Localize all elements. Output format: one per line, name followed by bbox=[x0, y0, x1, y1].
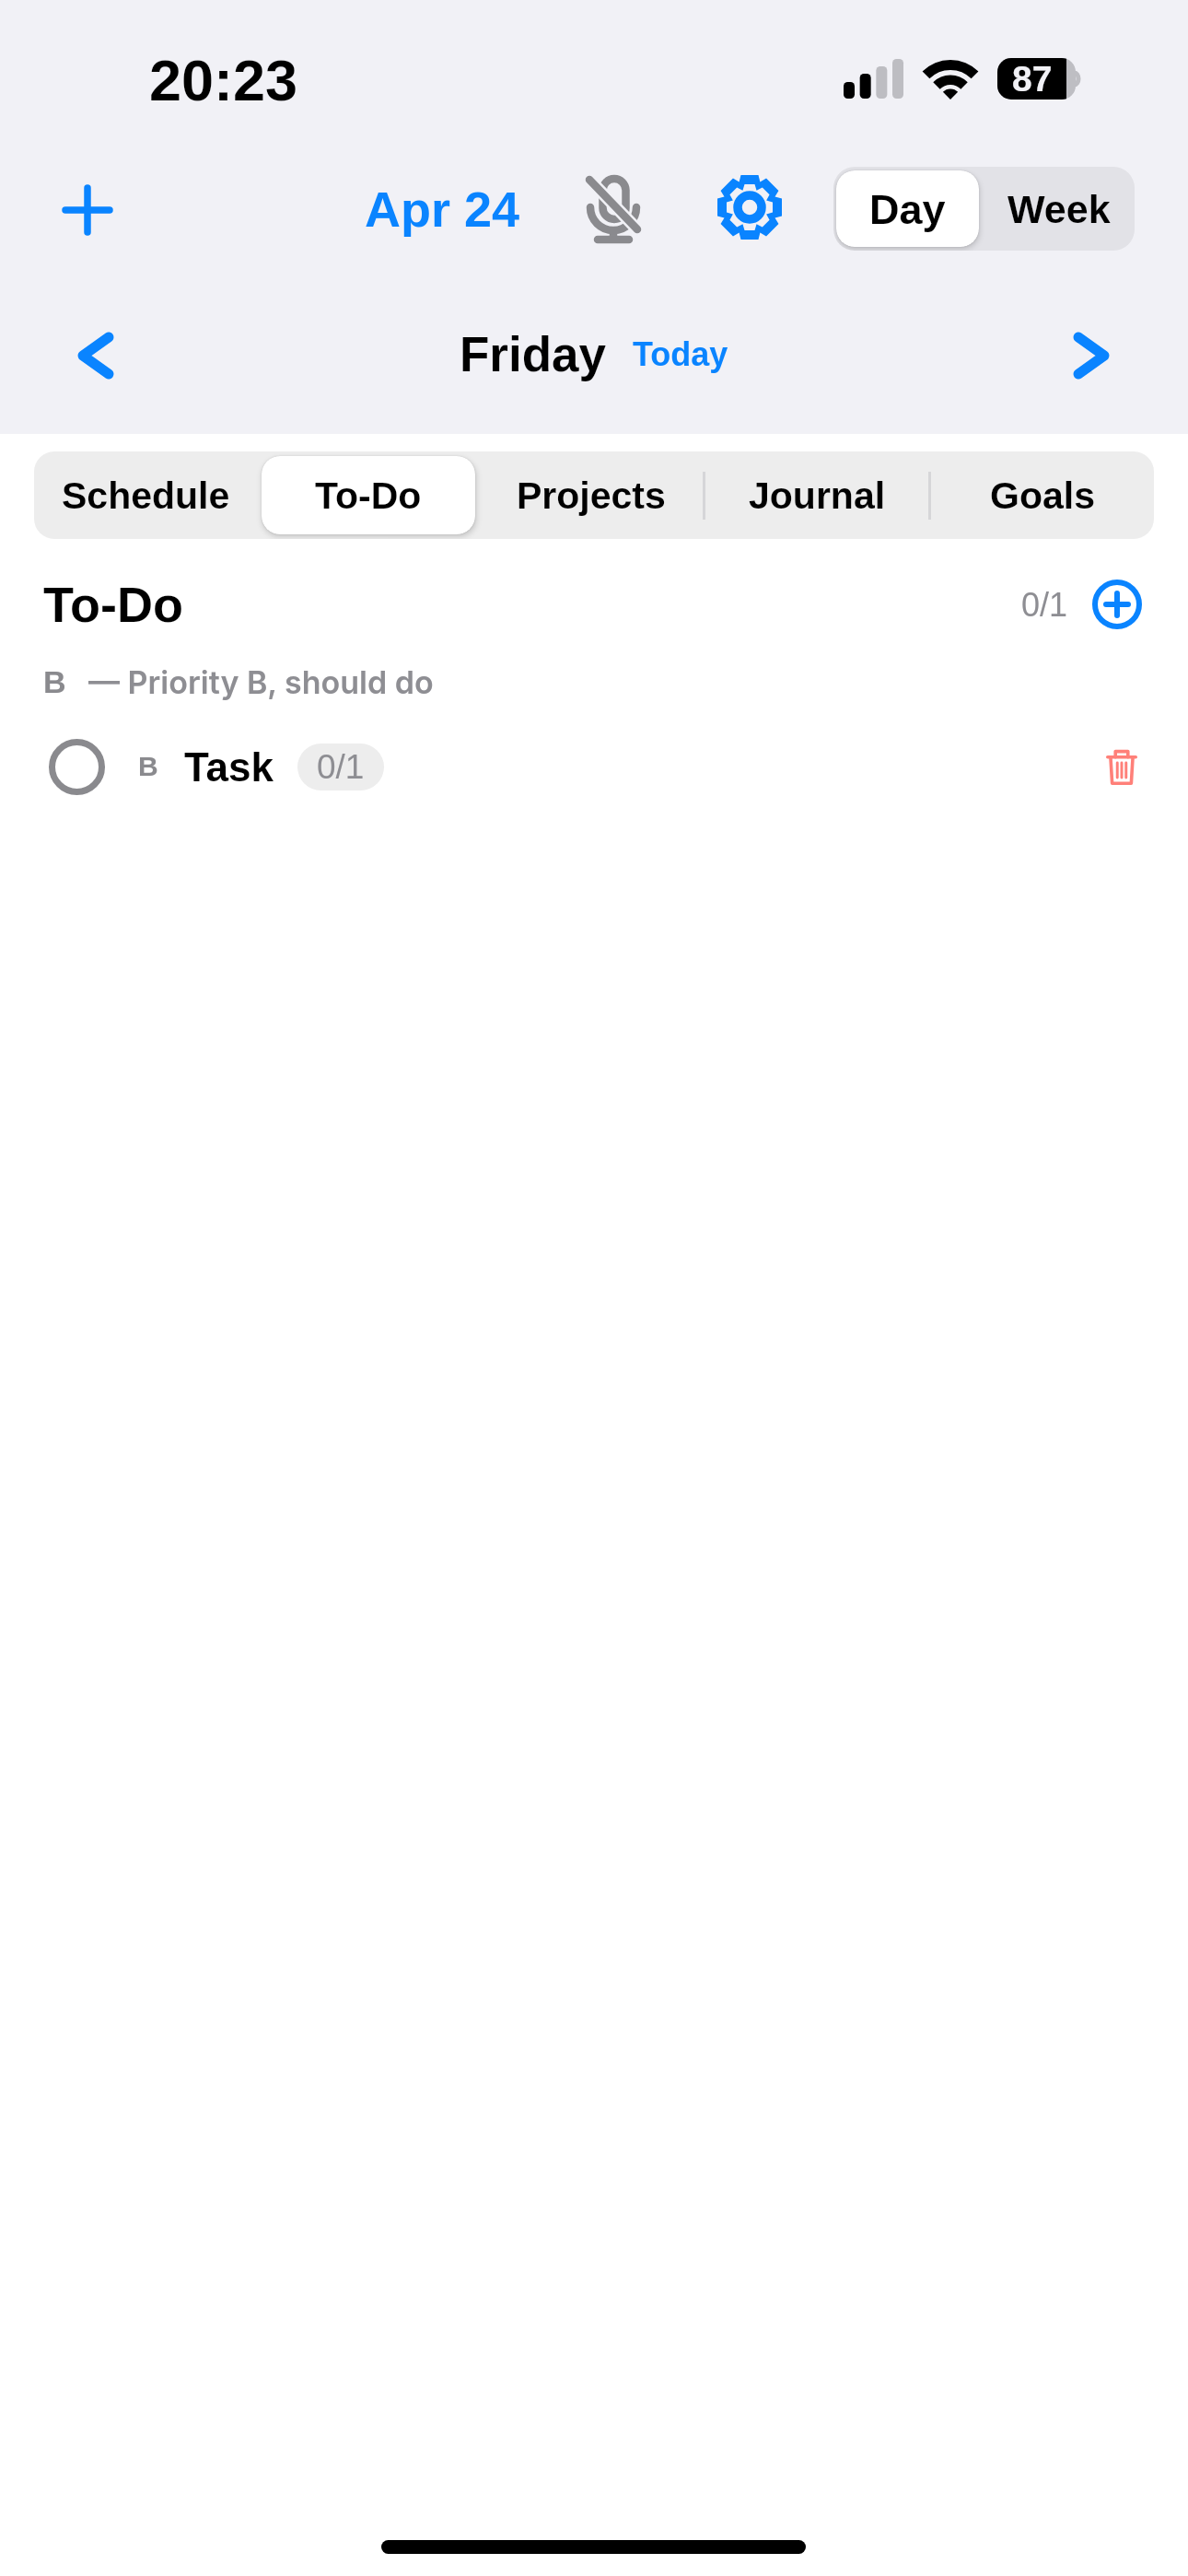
staticText: 20:23 bbox=[149, 48, 298, 112]
button[interactable]: Day bbox=[836, 170, 979, 247]
staticText: Week bbox=[1007, 187, 1111, 231]
button[interactable]: Add bbox=[41, 164, 134, 256]
staticText: 0/1 bbox=[317, 748, 365, 786]
button[interactable]: Schedule bbox=[39, 456, 252, 534]
button[interactable]: Add to-do bbox=[1092, 580, 1142, 629]
staticText: Apr 24 bbox=[365, 181, 520, 237]
staticText: — Priority B, should do bbox=[88, 663, 434, 701]
button[interactable]: Microphone off bbox=[576, 172, 651, 248]
staticText: To-Do bbox=[315, 474, 422, 517]
button[interactable]: Apr 24 bbox=[365, 181, 520, 237]
button[interactable]: Settings bbox=[712, 170, 787, 245]
button[interactable]: To-Do bbox=[262, 456, 475, 534]
button[interactable]: Week bbox=[984, 167, 1135, 251]
staticText: Day bbox=[869, 186, 946, 232]
staticText: Projects bbox=[517, 474, 666, 517]
button[interactable]: B bbox=[0, 728, 1188, 805]
staticText: 87 bbox=[1012, 59, 1053, 100]
staticText: 0/1 bbox=[1021, 586, 1068, 623]
staticText: B bbox=[138, 751, 158, 782]
staticText: To-Do bbox=[43, 577, 183, 632]
button[interactable]: Projects bbox=[484, 456, 698, 534]
button[interactable]: Goals bbox=[936, 456, 1149, 534]
staticText: Goals bbox=[990, 474, 1095, 517]
staticText: Schedule bbox=[62, 474, 230, 517]
staticText: B bbox=[43, 664, 66, 699]
button[interactable]: Previous day bbox=[59, 319, 133, 392]
button[interactable]: Next day bbox=[1054, 319, 1128, 392]
staticText: Task bbox=[184, 744, 274, 790]
button[interactable]: Delete bbox=[1089, 734, 1154, 799]
staticText: Journal bbox=[749, 474, 886, 517]
staticText: Today bbox=[633, 335, 728, 372]
button[interactable]: Journal bbox=[710, 456, 924, 534]
staticText: Friday bbox=[460, 327, 607, 381]
